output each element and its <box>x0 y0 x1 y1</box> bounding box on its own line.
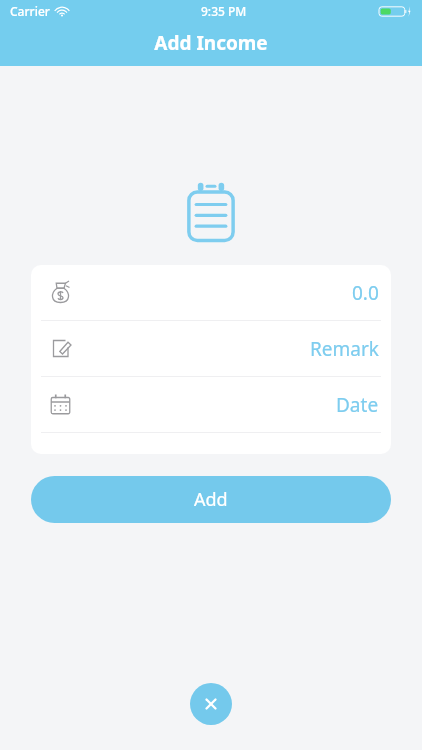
button[interactable]: Add <box>31 476 391 523</box>
button[interactable]: Remark <box>31 321 391 376</box>
staticText: Date <box>336 392 379 418</box>
staticText: 0.0 <box>352 280 379 306</box>
staticText: Add <box>194 487 228 512</box>
staticText: 9:35 PM <box>201 3 247 19</box>
staticText: Carrier <box>10 3 50 19</box>
button[interactable]: 0.0 <box>31 265 391 320</box>
staticText: Remark <box>310 336 379 362</box>
staticText: Add Income <box>154 30 268 56</box>
button[interactable]: Close <box>190 683 232 725</box>
button[interactable]: Date <box>31 377 391 432</box>
